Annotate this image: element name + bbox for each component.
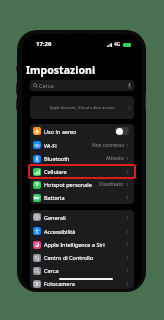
staticText: Apple Intelligence e Siri — [44, 241, 105, 248]
staticText: Cellulare — [44, 168, 67, 175]
button[interactable]: Uso in aereo — [30, 124, 134, 138]
staticText: Hotspot personale — [44, 181, 92, 188]
staticText: Bluetooth — [44, 155, 70, 162]
button[interactable]: Hotspot personale — [30, 178, 134, 191]
staticText: Fotocamera — [44, 280, 75, 287]
staticText: Generali — [44, 214, 66, 221]
button[interactable]: Bluetooth — [30, 152, 134, 165]
staticText: 17:26 — [36, 40, 52, 48]
button[interactable]: Cerca — [30, 264, 134, 277]
staticText: Centro di Controllo — [44, 254, 93, 261]
staticText: Batteria — [44, 194, 65, 201]
staticText: Cerca — [39, 82, 54, 89]
button[interactable]: Wi-Fi — [30, 138, 134, 152]
button[interactable]: Cerca — [30, 80, 134, 91]
staticText: Uso in aereo — [44, 128, 77, 135]
staticText: Cerca — [44, 267, 59, 274]
button[interactable]: Generali — [30, 210, 134, 224]
button[interactable]: Batteria — [30, 191, 134, 204]
button[interactable]: Accessibilità — [30, 224, 134, 238]
staticText: 4G — [114, 41, 121, 48]
button[interactable]: Apple Intelligence e Siri — [30, 238, 134, 251]
button[interactable]: Apple Account, iCloud e altro ancora — [30, 96, 134, 119]
staticText: Apple Account, iCloud e altro ancora — [50, 105, 115, 110]
staticText: Impostazioni — [26, 63, 96, 77]
button[interactable]: Cellulare — [30, 165, 134, 178]
staticText: Accessibilità — [44, 228, 76, 235]
staticText: Wi-Fi — [44, 142, 57, 149]
staticText: Disattivato — [99, 181, 124, 188]
staticText: Non connessa — [92, 142, 124, 149]
button[interactable]: Fotocamera — [30, 277, 134, 289]
staticText: Attivato — [106, 155, 124, 162]
button[interactable]: Centro di Controllo — [30, 251, 134, 264]
